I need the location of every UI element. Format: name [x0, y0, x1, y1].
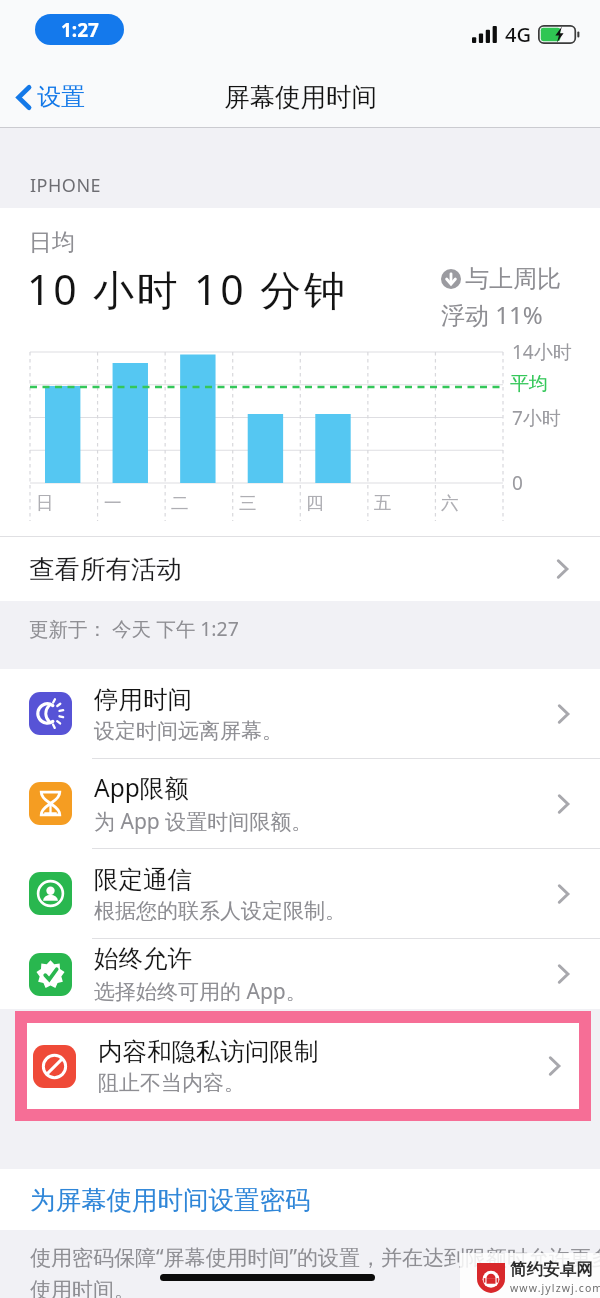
- staticText: 五: [374, 492, 392, 514]
- staticText: 10 小时 10 分钟: [27, 261, 348, 317]
- staticText: 设置: [37, 82, 85, 112]
- button[interactable]: 内容和隐私访问限制: [27, 1023, 579, 1109]
- staticText: 1:27: [61, 17, 99, 43]
- button[interactable]: 限定通信: [0, 849, 600, 938]
- staticText: 根据您的联系人设定限制。: [94, 898, 346, 924]
- button[interactable]: 始终允许: [0, 939, 600, 1009]
- staticText: 屏幕使用时间: [224, 81, 377, 113]
- staticText: 4G: [505, 21, 531, 48]
- staticText: IPHONE: [30, 173, 102, 198]
- staticText: 为屏幕使用时间设置密码: [30, 1184, 311, 1216]
- staticText: 一: [104, 492, 122, 514]
- staticText: 查看所有活动: [29, 553, 182, 585]
- staticText: 简约安卓网: [510, 1259, 593, 1280]
- button[interactable]: 查看所有活动: [0, 537, 600, 601]
- button[interactable]: 设置: [16, 82, 85, 112]
- staticText: www.jylzwj.com: [510, 1281, 600, 1295]
- staticText: 限定通信: [94, 864, 192, 895]
- staticText: 使用时间。: [30, 1277, 135, 1298]
- button[interactable]: 停用时间: [0, 669, 600, 758]
- button[interactable]: 为屏幕使用时间设置密码: [0, 1169, 600, 1230]
- staticText: 三: [239, 492, 257, 514]
- staticText: 停用时间: [94, 684, 192, 715]
- staticText: 平均: [510, 372, 548, 396]
- staticText: 阻止不当内容。: [98, 1070, 245, 1096]
- staticText: 使用密码保障“屏幕使用时间”的设置，并在达到限额时允许更多: [30, 1243, 600, 1272]
- staticText: 7小时: [512, 405, 561, 431]
- staticText: 更新于： 今天 下午 1:27: [29, 615, 239, 642]
- staticText: 二: [171, 492, 189, 514]
- staticText: 日均: [29, 228, 75, 257]
- staticText: 四: [306, 492, 324, 514]
- staticText: 六: [441, 492, 459, 514]
- staticText: 日: [36, 492, 54, 514]
- staticText: 为 App 设置时间限额。: [94, 807, 313, 836]
- staticText: 始终允许: [94, 943, 192, 974]
- staticText: App限额: [94, 771, 189, 804]
- staticText: 内容和隐私访问限制: [98, 1036, 319, 1067]
- staticText: 0: [512, 470, 523, 496]
- staticText: 与上周比: [465, 264, 561, 294]
- button[interactable]: App限额: [0, 759, 600, 848]
- staticText: 选择始终可用的 App。: [94, 977, 307, 1006]
- staticText: 14小时: [512, 339, 572, 365]
- staticText: 浮动 11%: [441, 298, 543, 331]
- staticText: 设定时间远离屏幕。: [94, 718, 283, 744]
